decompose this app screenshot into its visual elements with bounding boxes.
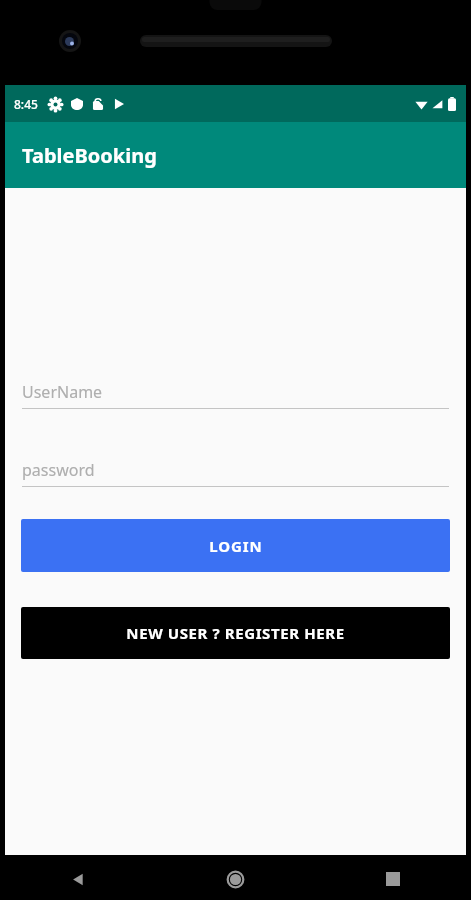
button[interactable]: Recent apps [314, 858, 471, 900]
button[interactable]: NEW USER ? REGISTER HERE [21, 607, 450, 659]
staticText: 8:45 [14, 96, 38, 112]
staticText: NEW USER ? REGISTER HERE [126, 623, 345, 643]
button[interactable]: Home [157, 858, 314, 900]
staticText: UserName [22, 381, 103, 403]
staticText: TableBooking [22, 142, 157, 169]
staticText: password [22, 459, 95, 481]
button[interactable]: LOGIN [21, 519, 450, 572]
button[interactable]: password [22, 459, 449, 487]
button[interactable]: Back [0, 858, 157, 900]
button[interactable]: UserName [22, 381, 449, 409]
staticText: LOGIN [209, 536, 263, 556]
